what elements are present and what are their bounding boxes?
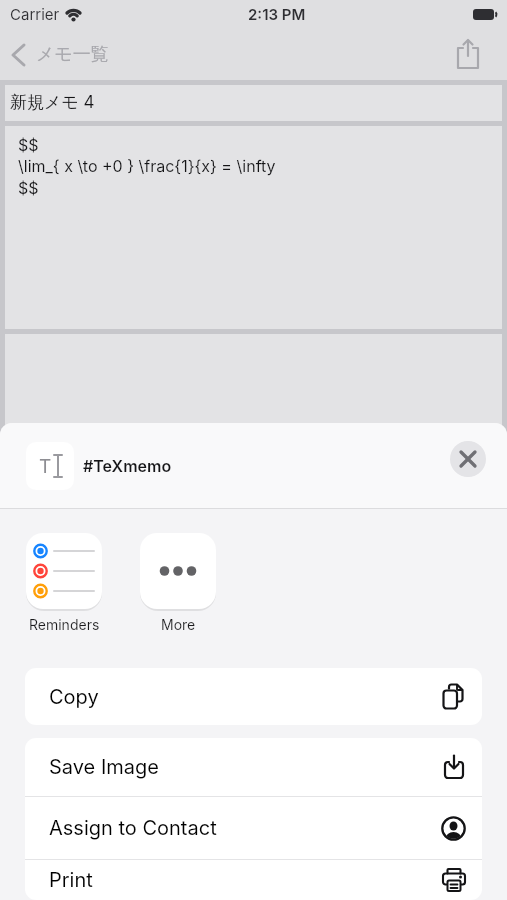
staticText: Print <box>49 868 93 892</box>
staticText: $$ \lim_{ x \to +0 } \frac{1}{x} = \inft… <box>18 135 276 198</box>
staticText: Assign to Contact <box>49 816 217 840</box>
button[interactable]: $$ \lim_{ x \to +0 } \frac{1}{x} = \inft… <box>5 126 502 329</box>
staticText: T <box>39 455 52 478</box>
staticText: More <box>161 616 196 633</box>
staticText: メモ一覧 <box>36 43 109 66</box>
button[interactable]: メモ一覧 <box>12 43 109 66</box>
button[interactable]: Copy <box>25 668 482 725</box>
staticText: Save Image <box>49 755 159 779</box>
button[interactable]: Assign to Contact <box>25 797 482 859</box>
staticText: Copy <box>49 685 99 709</box>
staticText: #TeXmemo <box>83 456 172 475</box>
button[interactable]: Reminders <box>26 533 102 633</box>
staticText: 2:13 PM <box>248 5 306 23</box>
button[interactable]: 新規メモ 4 <box>5 85 502 121</box>
button[interactable]: Save Image <box>25 738 482 796</box>
button[interactable] <box>450 441 486 477</box>
staticText: Reminders <box>29 616 100 633</box>
staticText: Carrier <box>10 5 60 23</box>
staticText: 新規メモ 4 <box>10 92 95 114</box>
button[interactable]: More <box>140 533 216 633</box>
button[interactable] <box>455 39 481 69</box>
button[interactable]: Print <box>25 860 482 900</box>
